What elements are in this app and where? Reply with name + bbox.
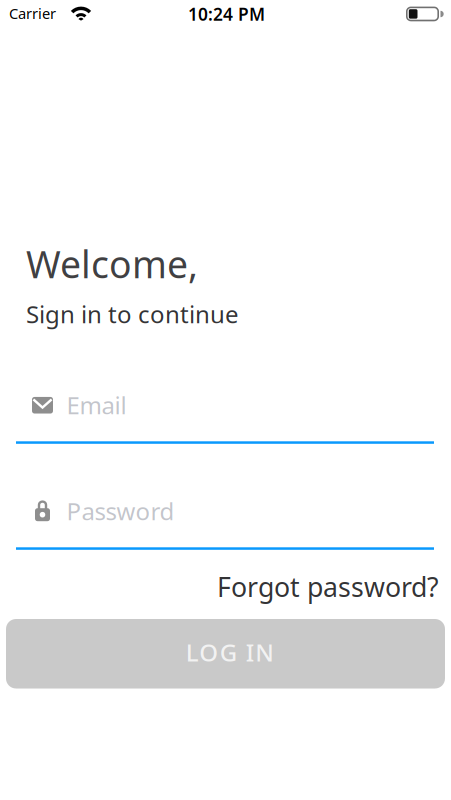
staticText: 10:24 PM: [188, 2, 265, 25]
staticText: Forgot password?: [217, 569, 439, 604]
button[interactable]: LOG IN: [6, 619, 445, 688]
staticText: Carrier: [9, 3, 56, 23]
button[interactable]: Forgot password?: [0, 569, 451, 604]
staticText: Sign in to continue: [26, 298, 239, 330]
staticText: LOG IN: [186, 636, 274, 668]
staticText: Password: [66, 495, 174, 527]
staticText: Welcome,: [26, 239, 198, 289]
staticText: Email: [66, 389, 126, 421]
button[interactable]: Password: [16, 495, 434, 550]
button[interactable]: Email: [16, 389, 434, 444]
